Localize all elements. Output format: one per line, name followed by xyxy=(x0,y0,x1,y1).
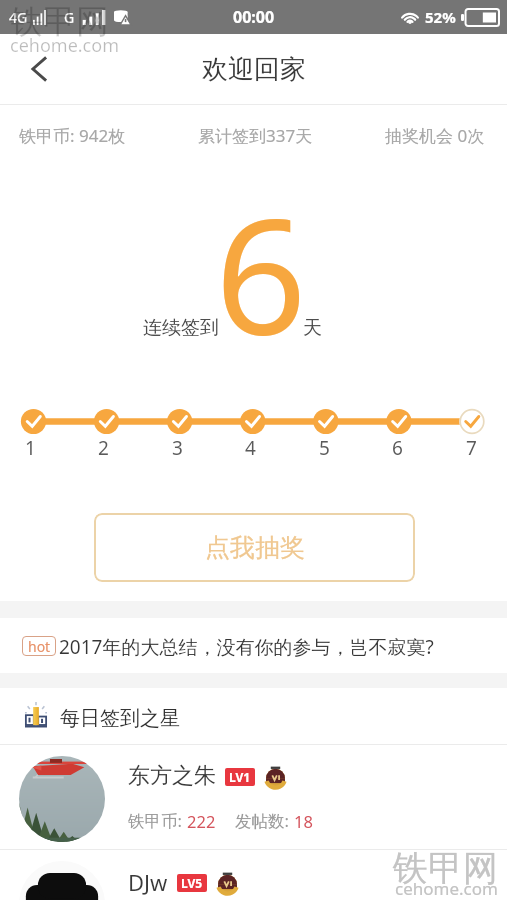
staticText: 铁甲币: xyxy=(128,809,187,832)
staticText: 222 xyxy=(187,810,216,832)
staticText: 00:00 xyxy=(233,6,275,28)
staticText: 4G xyxy=(9,8,28,27)
staticText: hot xyxy=(28,637,51,656)
staticText: 每日签到之星 xyxy=(60,706,180,731)
staticText: 7 xyxy=(466,435,477,461)
staticText: 东方之朱 xyxy=(128,762,216,790)
staticText: 抽奖机会 0次 xyxy=(385,124,485,147)
staticText: 欢迎回家 xyxy=(202,53,306,86)
staticText: G xyxy=(64,8,75,27)
staticText: 铁甲币: 942枚 xyxy=(19,124,126,147)
staticText: cehome.com xyxy=(10,33,119,58)
staticText: 6 xyxy=(215,163,307,381)
button[interactable]: 东方之朱 xyxy=(0,744,507,849)
staticText: 2 xyxy=(98,435,109,461)
staticText: 铁甲网 xyxy=(393,846,498,890)
staticText: 18 xyxy=(294,810,313,832)
staticText: 发帖数: xyxy=(235,809,294,832)
button[interactable]: hot xyxy=(0,618,507,673)
staticText: cehome.com xyxy=(395,877,498,900)
staticText: 6 xyxy=(392,435,403,461)
button[interactable]: Back xyxy=(0,34,78,104)
staticText: 5 xyxy=(319,435,330,461)
staticText: 铁甲网 xyxy=(10,1,109,43)
button[interactable]: 点我抽奖 xyxy=(94,513,415,582)
staticText: 1 xyxy=(25,435,36,461)
staticText: LV1 xyxy=(229,769,251,785)
staticText: 累计签到337天 xyxy=(198,124,313,147)
staticText: 点我抽奖 xyxy=(205,532,305,563)
staticText: LV5 xyxy=(181,875,203,891)
staticText: 4 xyxy=(245,435,256,461)
staticText: 3 xyxy=(172,435,183,461)
staticText: 天 xyxy=(303,316,322,340)
staticText: 52% xyxy=(425,7,456,27)
staticText: 2017年的大总结，没有你的参与，岂不寂寞? xyxy=(59,634,434,660)
staticText: DJw xyxy=(128,867,168,897)
staticText: 连续签到 xyxy=(143,316,219,340)
button[interactable]: DJw xyxy=(0,849,507,900)
